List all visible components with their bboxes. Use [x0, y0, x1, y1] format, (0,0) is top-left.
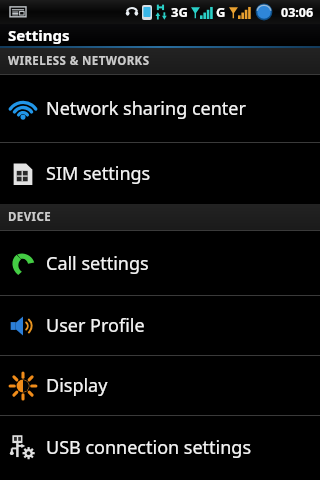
other: Display: [9, 372, 37, 400]
button[interactable]: User Profile: [0, 296, 320, 355]
staticText: Call settings: [46, 251, 149, 276]
button[interactable]: Call: [0, 231, 320, 295]
button[interactable]: USB connection settings: [0, 416, 320, 478]
other: USB connection settings: [9, 433, 37, 461]
button[interactable]: Wi-Fi: [0, 75, 320, 142]
staticText: Settings: [8, 25, 70, 45]
other: User Profile: [9, 312, 37, 340]
staticText: G: [216, 3, 226, 21]
staticText: 03:06: [281, 4, 314, 21]
staticText: DEVICE: [8, 209, 52, 225]
staticText: User Profile: [46, 313, 145, 338]
staticText: Network sharing center: [46, 96, 246, 121]
button[interactable]: SIM: [0, 143, 320, 204]
other: SIM: [10, 161, 36, 187]
other: Call: [8, 248, 38, 278]
staticText: SIM settings: [46, 161, 151, 186]
staticText: USB connection settings: [46, 435, 252, 460]
staticText: 3G: [171, 3, 188, 21]
staticText: WIRELESS & NETWORKS: [8, 53, 150, 69]
other: Wi-Fi: [8, 94, 38, 124]
staticText: Display: [46, 373, 108, 398]
button[interactable]: Display: [0, 356, 320, 415]
